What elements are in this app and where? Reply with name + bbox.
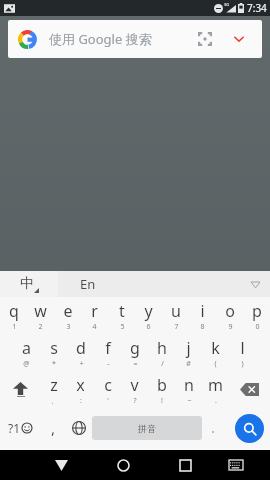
button[interactable]: ?1 — [0, 408, 40, 448]
button[interactable]: 拼音 — [92, 416, 202, 440]
button[interactable]: 中 — [0, 271, 58, 297]
button[interactable]: u — [162, 297, 189, 334]
button[interactable]: Shift — [0, 371, 40, 408]
button[interactable]: t — [108, 297, 135, 334]
staticText: = — [133, 359, 138, 369]
button[interactable]: v — [121, 371, 148, 408]
staticText: y — [144, 300, 153, 322]
staticText: ' — [107, 396, 109, 406]
button[interactable]: e — [54, 297, 81, 334]
button[interactable]: b — [148, 371, 175, 408]
staticText: * — [52, 359, 56, 369]
staticText: 。 — [211, 423, 220, 434]
staticText: l — [240, 337, 245, 359]
staticText: / — [161, 359, 164, 369]
button[interactable]: Home — [103, 450, 143, 480]
button[interactable]: q — [0, 297, 27, 334]
staticText: @ — [23, 359, 30, 369]
button[interactable]: Backspace — [229, 371, 270, 408]
staticText: ? — [133, 396, 137, 406]
staticText: z — [50, 374, 58, 396]
button[interactable]: w — [27, 297, 54, 334]
staticText: 中 — [20, 275, 34, 293]
staticText: w — [34, 300, 47, 322]
staticText: + — [79, 359, 84, 369]
staticText: 、 — [51, 396, 58, 405]
staticText: En — [80, 275, 96, 293]
button[interactable]: Hide keyboard — [42, 450, 81, 480]
button[interactable]: f — [94, 334, 121, 371]
button[interactable]: 。 — [202, 408, 228, 448]
button[interactable]: More candidates — [244, 273, 266, 295]
staticText: h — [157, 337, 167, 359]
button[interactable]: a — [13, 334, 40, 371]
staticText: k — [211, 337, 220, 359]
staticText: t — [119, 300, 125, 322]
staticText: 2 — [38, 322, 43, 332]
staticText: 3G — [224, 2, 230, 7]
button[interactable]: g — [121, 334, 148, 371]
button[interactable]: r — [81, 297, 108, 334]
staticText: , — [51, 418, 56, 438]
staticText: 3 — [66, 322, 71, 332]
staticText: o — [225, 300, 235, 322]
staticText: m — [208, 374, 223, 396]
staticText: 7:34 — [247, 1, 267, 15]
button[interactable]: Search — [235, 414, 264, 443]
staticText: 7 — [174, 322, 179, 332]
button[interactable]: c — [94, 371, 121, 408]
staticText: 0 — [255, 322, 260, 332]
staticText: q — [9, 300, 19, 322]
button[interactable]: k — [202, 334, 229, 371]
button[interactable]: h — [148, 334, 175, 371]
button[interactable]: 使用 Google 搜索 — [8, 20, 262, 58]
staticText: 6 — [146, 322, 151, 332]
staticText: u — [171, 300, 181, 322]
staticText: # — [186, 359, 191, 369]
staticText: i — [200, 300, 205, 322]
staticText: ~ — [187, 396, 192, 406]
button[interactable]: z — [40, 371, 67, 408]
button[interactable]: Change keyboard language — [66, 408, 92, 448]
staticText: b — [157, 374, 167, 396]
staticText: : — [80, 396, 82, 406]
staticText: 5 — [120, 322, 125, 332]
staticText: 拼音 — [138, 423, 156, 434]
button[interactable]: n — [175, 371, 202, 408]
staticText: 4 — [92, 322, 97, 332]
staticText: a — [22, 337, 31, 359]
staticText: f — [105, 337, 111, 359]
staticText: j — [186, 337, 191, 359]
button[interactable]: i — [189, 297, 216, 334]
staticText: d — [76, 337, 86, 359]
staticText: 8 — [200, 322, 205, 332]
staticText: 使用 Google 搜索 — [49, 30, 152, 48]
staticText: 9 — [228, 322, 233, 332]
staticText: n — [184, 374, 194, 396]
staticText: ?1 — [8, 420, 21, 436]
staticText: v — [130, 374, 139, 396]
button[interactable]: En — [58, 271, 270, 297]
button[interactable]: , — [40, 408, 66, 448]
button[interactable]: Google Lens — [192, 26, 218, 52]
button[interactable]: o — [216, 297, 243, 334]
button[interactable]: d — [67, 334, 94, 371]
button[interactable]: x — [67, 371, 94, 408]
staticText: c — [104, 374, 112, 396]
button[interactable]: Recent apps — [165, 450, 205, 480]
staticText: r — [91, 300, 98, 322]
button[interactable]: l — [229, 334, 256, 371]
staticText: . — [215, 396, 217, 406]
staticText: s — [50, 337, 58, 359]
button[interactable]: m — [202, 371, 229, 408]
button[interactable]: s — [40, 334, 67, 371]
staticText: g — [130, 337, 140, 359]
staticText: ! — [161, 396, 163, 406]
button[interactable]: Collapse — [226, 26, 252, 52]
button[interactable]: j — [175, 334, 202, 371]
staticText: ) — [241, 359, 244, 369]
button[interactable]: y — [135, 297, 162, 334]
button[interactable]: p — [243, 297, 270, 334]
button[interactable]: Switch keyboard — [216, 450, 256, 480]
staticText: p — [252, 300, 262, 322]
